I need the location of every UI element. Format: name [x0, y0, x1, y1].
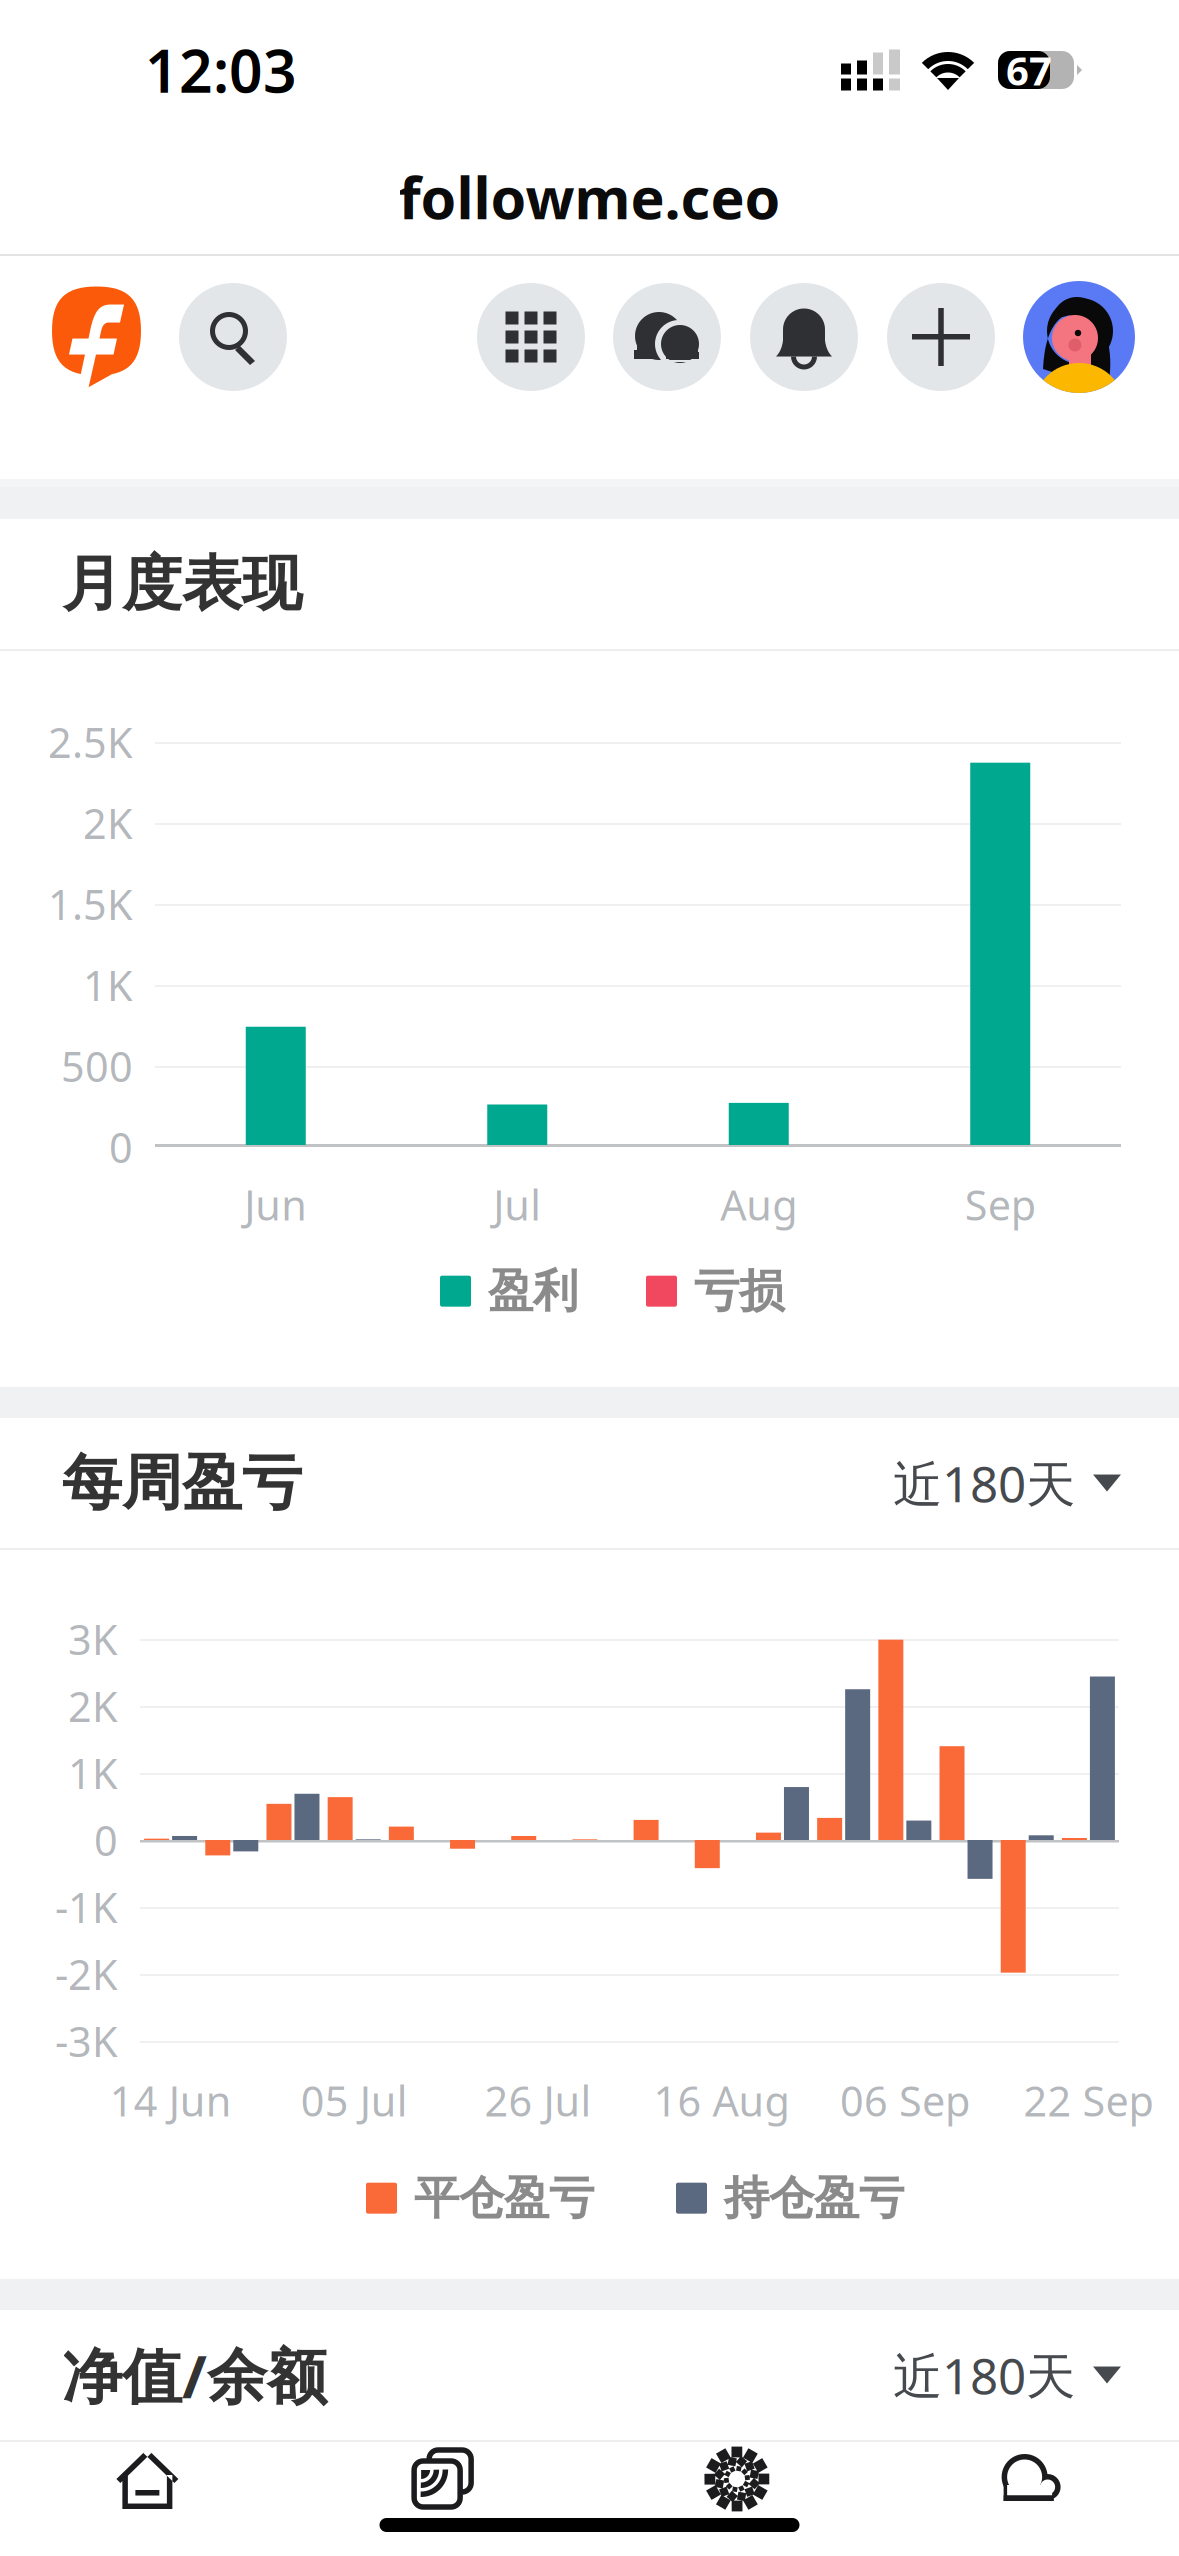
staticText: 月度表现 [62, 547, 302, 621]
staticText: Aug [720, 1177, 797, 1232]
button[interactable]: Create [887, 283, 995, 391]
staticText: 14 Jun [110, 2073, 232, 2128]
staticText: 0 [109, 1120, 133, 1174]
staticText: 2.5K [48, 715, 133, 769]
button[interactable]: Discover [589, 2449, 884, 2509]
staticText: 近180天 [893, 2342, 1075, 2408]
staticText: 26 Jul [484, 2073, 591, 2128]
button[interactable]: Messages [884, 2449, 1179, 2509]
button[interactable]: Messages [613, 283, 721, 391]
button[interactable]: 近180天 [893, 2334, 1121, 2416]
staticText: 1K [68, 1746, 118, 1800]
staticText: 近180天 [893, 1450, 1075, 1516]
staticText: Jun [244, 1177, 307, 1232]
staticText: 22 Sep [1024, 2073, 1154, 2128]
staticText: -1K [55, 1880, 118, 1934]
staticText: 05 Jul [301, 2073, 408, 2128]
staticText: 06 Sep [840, 2073, 970, 2128]
staticText: 平仓盈亏 [414, 2170, 594, 2226]
staticText: 500 [61, 1039, 133, 1093]
staticText: 2K [83, 796, 133, 850]
staticText: 持仓盈亏 [724, 2170, 904, 2226]
button[interactable]: FollowMe [52, 286, 141, 387]
staticText: 16 Aug [653, 2073, 789, 2128]
button[interactable]: Search [179, 283, 287, 391]
staticText: 2K [68, 1679, 118, 1733]
staticText: -2K [55, 1947, 118, 2001]
staticText: -3K [55, 2014, 118, 2068]
staticText: 亏损 [694, 1263, 784, 1319]
button[interactable]: Home [0, 2449, 295, 2509]
button[interactable]: Apps [477, 283, 585, 391]
staticText: 盈利 [488, 1263, 578, 1319]
staticText: 12:03 [145, 31, 297, 109]
button[interactable]: 近180天 [893, 1442, 1121, 1524]
staticText: 净值/余额 [62, 2335, 327, 2415]
staticText: followme.ceo [398, 159, 780, 235]
staticText: Sep [965, 1177, 1036, 1232]
staticText: 1K [83, 958, 133, 1012]
staticText: 67 [1006, 43, 1052, 96]
button[interactable]: Profile [1023, 281, 1135, 393]
button[interactable]: Notifications [750, 283, 858, 391]
staticText: Jul [493, 1177, 541, 1232]
staticText: 0 [94, 1813, 118, 1867]
staticText: 3K [68, 1612, 118, 1666]
button[interactable]: Feed [295, 2449, 590, 2509]
staticText: 每周盈亏 [62, 1446, 302, 1520]
staticText: 1.5K [48, 877, 133, 931]
